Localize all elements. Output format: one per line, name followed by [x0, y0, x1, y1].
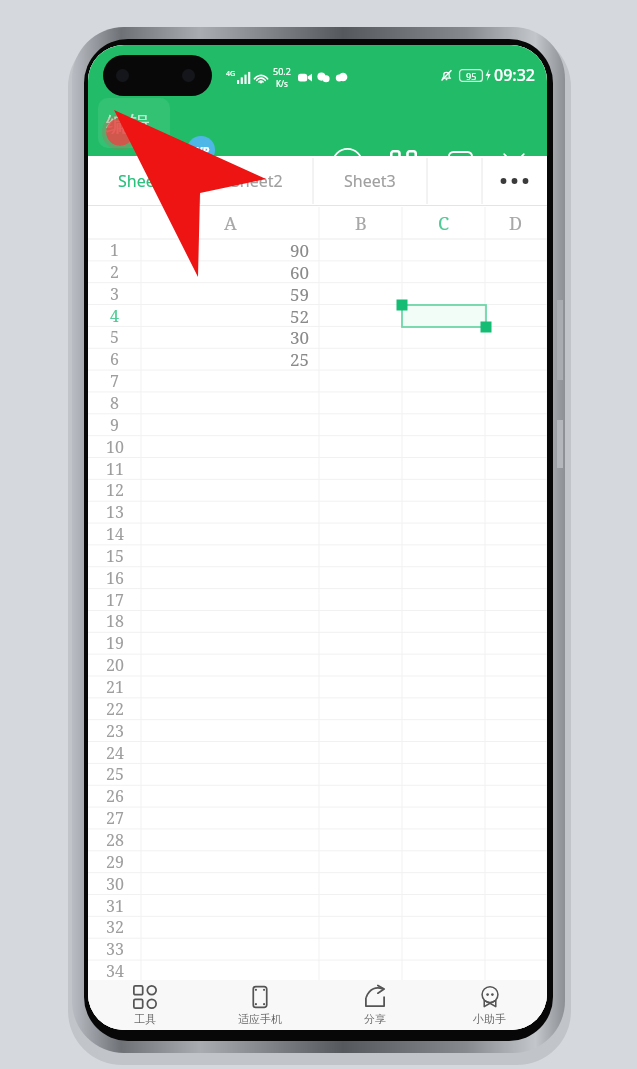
- staticText: 小助手: [473, 1012, 506, 1026]
- staticText: 17: [106, 589, 124, 611]
- button[interactable]: Documents: [440, 143, 481, 184]
- staticText: A: [224, 211, 237, 236]
- staticText: 52: [290, 305, 310, 327]
- staticText: Sheet1: [118, 170, 170, 192]
- staticText: 22: [106, 698, 124, 720]
- staticText: 25: [290, 348, 310, 370]
- staticText: 12: [106, 479, 124, 501]
- staticText: WP: [192, 143, 210, 158]
- staticText: 23: [106, 720, 124, 742]
- staticText: B: [355, 211, 367, 236]
- staticText: 34: [106, 960, 124, 982]
- button[interactable]: Close: [494, 144, 534, 184]
- staticText: 20: [106, 654, 124, 676]
- button[interactable]: Sheet2: [200, 156, 313, 206]
- staticText: Sheet3: [344, 170, 396, 192]
- staticText: 4: [110, 305, 119, 327]
- button[interactable]: 适应手机: [202, 980, 317, 1030]
- staticText: 19: [106, 632, 124, 654]
- staticText: 21: [106, 676, 124, 698]
- staticText: 24: [106, 742, 124, 764]
- button[interactable]: D: [496, 207, 536, 239]
- button[interactable]: 分享: [317, 980, 432, 1030]
- staticText: D: [509, 211, 523, 236]
- staticText: 15: [106, 545, 124, 567]
- staticText: 9: [110, 414, 119, 436]
- staticText: 95: [466, 70, 477, 82]
- button[interactable]: Sheet3: [313, 156, 427, 206]
- button[interactable]: 工具: [88, 980, 202, 1030]
- staticText: 30: [106, 873, 124, 895]
- staticText: 25: [106, 763, 124, 785]
- staticText: 50.2: [273, 65, 291, 77]
- staticText: 16: [106, 567, 124, 589]
- button[interactable]: Account: [187, 136, 215, 164]
- staticText: 工具: [134, 1012, 156, 1026]
- staticText: 13: [106, 501, 124, 523]
- staticText: 14: [106, 523, 124, 545]
- staticText: 7: [110, 370, 119, 392]
- staticText: 30: [290, 326, 310, 348]
- staticText: 2: [110, 261, 119, 283]
- button[interactable]: 小助手: [432, 980, 547, 1030]
- button[interactable]: Sheet1: [88, 156, 200, 206]
- staticText: 33: [106, 938, 124, 960]
- staticText: 6: [110, 348, 119, 370]
- button[interactable]: A: [210, 207, 250, 239]
- staticText: 59: [290, 283, 310, 305]
- staticText: 27: [106, 807, 124, 829]
- staticText: Sheet2: [231, 170, 283, 192]
- staticText: 29: [106, 851, 124, 873]
- staticText: 90: [290, 239, 310, 261]
- staticText: 3: [110, 283, 119, 305]
- staticText: 26: [106, 785, 124, 807]
- staticText: 1: [110, 239, 119, 261]
- button[interactable]: 编辑: [98, 98, 170, 148]
- staticText: 8: [110, 392, 119, 414]
- staticText: 分享: [364, 1012, 386, 1026]
- staticText: 11: [106, 458, 124, 480]
- staticText: 适应手机: [238, 1012, 282, 1026]
- staticText: K/s: [276, 78, 288, 89]
- button[interactable]: B: [341, 207, 381, 239]
- staticText: 09:32: [494, 64, 535, 86]
- staticText: 5: [110, 326, 119, 348]
- staticText: 28: [106, 829, 124, 851]
- button[interactable]: More sheet options: [482, 156, 547, 206]
- staticText: 60: [290, 261, 310, 283]
- staticText: 10: [106, 436, 124, 458]
- staticText: 编辑: [106, 111, 150, 139]
- staticText: 4G: [226, 69, 236, 79]
- staticText: C: [438, 211, 450, 236]
- button[interactable]: All tools: [382, 142, 425, 185]
- button[interactable]: Save to cloud: [324, 140, 371, 187]
- staticText: 18: [106, 610, 124, 632]
- staticText: 32: [106, 916, 124, 938]
- button[interactable]: C: [424, 207, 464, 239]
- staticText: 31: [106, 895, 124, 917]
